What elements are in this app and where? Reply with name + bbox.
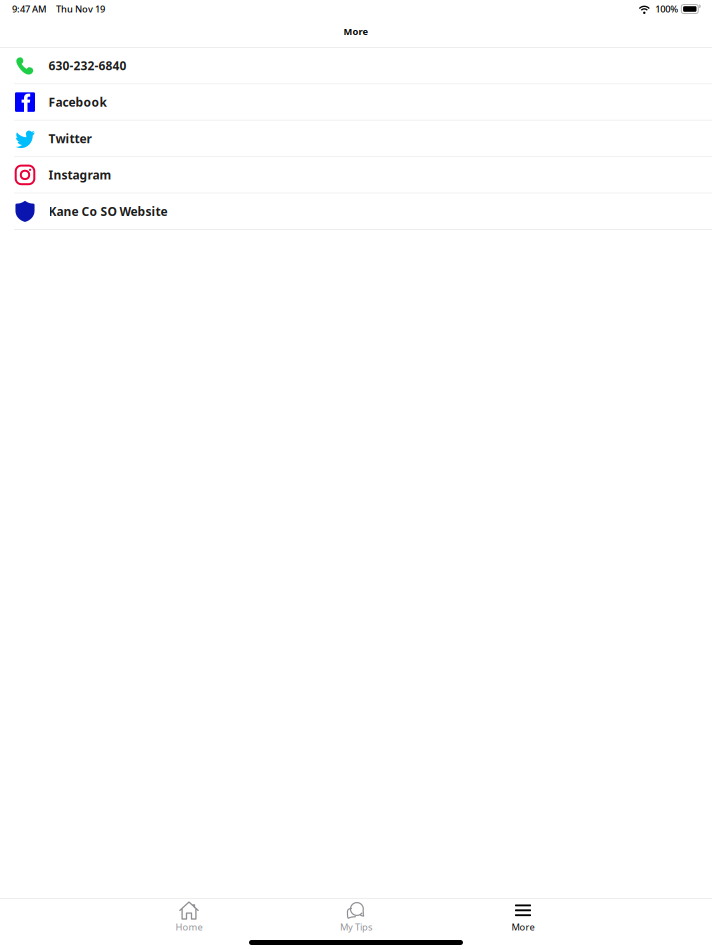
staticText: 9:47 AM <box>12 3 47 15</box>
button[interactable]: Home <box>105 900 272 934</box>
staticText: Home <box>175 921 202 933</box>
staticText: Instagram <box>48 167 111 183</box>
button[interactable]: My Tips <box>272 900 439 934</box>
button[interactable]: Instagram <box>0 157 712 193</box>
staticText: Twitter <box>48 130 91 146</box>
button[interactable]: Twitter <box>0 121 712 156</box>
button[interactable]: More <box>439 900 606 934</box>
staticText: Facebook <box>48 94 106 110</box>
staticText: My Tips <box>340 921 372 933</box>
button[interactable]: Kane Co SO Website <box>0 194 712 229</box>
staticText: Kane Co SO Website <box>48 203 167 219</box>
staticText: 100% <box>655 3 678 15</box>
staticText: More <box>511 921 534 933</box>
staticText: More <box>343 25 368 38</box>
button[interactable]: Facebook <box>0 84 712 120</box>
button[interactable]: 630-232-6840 <box>0 48 712 83</box>
staticText: Thu Nov 19 <box>56 3 105 15</box>
staticText: 630-232-6840 <box>48 58 126 74</box>
